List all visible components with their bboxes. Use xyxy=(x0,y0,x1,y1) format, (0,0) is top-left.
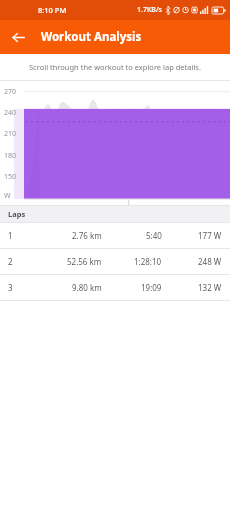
staticText: 150 xyxy=(4,172,17,182)
staticText: 210 xyxy=(4,129,17,139)
staticText: 1 xyxy=(8,230,13,241)
button[interactable]: 3 xyxy=(0,275,230,300)
staticText: 5:40 xyxy=(146,230,162,241)
staticText: 9.80 km xyxy=(72,282,102,293)
staticText: Workout Analysis xyxy=(41,29,142,45)
staticText: 19:09 xyxy=(141,282,162,293)
staticText: 8:10 PM xyxy=(38,5,67,15)
staticText: 3 xyxy=(8,282,13,293)
staticText: 270 xyxy=(4,87,17,97)
staticText: Scroll through the workout to explore la… xyxy=(29,62,201,72)
staticText: 52.56 km xyxy=(67,256,102,267)
button[interactable]: Back xyxy=(6,25,30,49)
staticText: Laps xyxy=(8,209,26,219)
staticText: 1.7KB/s xyxy=(137,5,163,15)
staticText: 180 xyxy=(4,151,17,161)
staticText: 248 W xyxy=(198,256,222,267)
staticText: W xyxy=(4,191,11,201)
button[interactable]: 2 xyxy=(0,249,230,274)
staticText: 2 xyxy=(8,256,13,267)
staticText: 2.76 km xyxy=(72,230,102,241)
staticText: 1:28:10 xyxy=(134,256,162,267)
button[interactable]: 1 xyxy=(0,223,230,248)
staticText: 240 xyxy=(4,108,17,118)
staticText: 177 W xyxy=(198,230,222,241)
staticText: 132 W xyxy=(198,282,222,293)
